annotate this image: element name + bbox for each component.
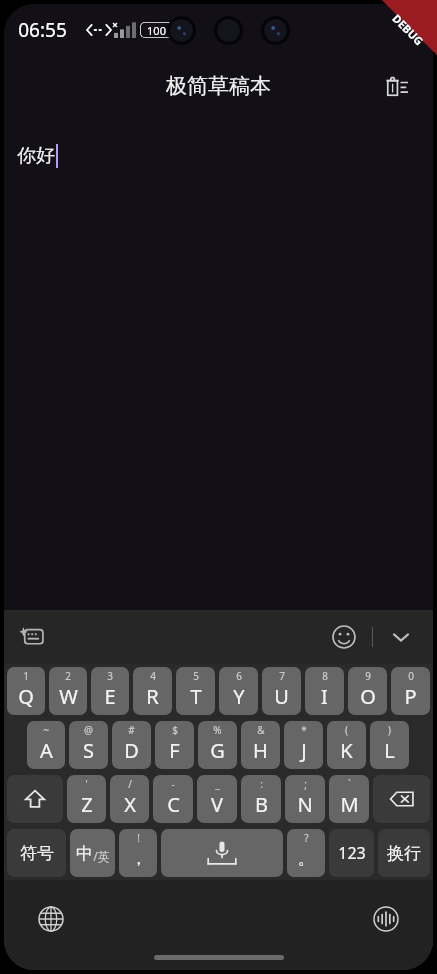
- button[interactable]: 换行: [378, 829, 430, 877]
- staticText: J: [301, 737, 307, 764]
- button[interactable]: 7: [262, 667, 301, 715]
- button[interactable]: ): [370, 721, 409, 769]
- staticText: @: [84, 723, 93, 737]
- button[interactable]: Hide keyboard: [381, 617, 421, 657]
- button[interactable]: /: [110, 775, 149, 823]
- button[interactable]: Smart keyboard: [12, 617, 52, 657]
- staticText: 你好: [17, 144, 55, 168]
- button[interactable]: 0: [391, 667, 430, 715]
- staticText: Q: [18, 683, 34, 710]
- button[interactable]: Shift: [7, 775, 63, 823]
- button[interactable]: 你好: [4, 116, 433, 610]
- button[interactable]: -: [153, 775, 193, 823]
- staticText: ;: [304, 777, 307, 791]
- button[interactable]: Emoji: [324, 617, 364, 657]
- staticText: 8: [322, 669, 328, 683]
- staticText: /英: [93, 848, 110, 864]
- staticText: N: [297, 791, 313, 818]
- staticText: S: [83, 737, 94, 764]
- button[interactable]: `: [329, 775, 369, 823]
- staticText: C: [167, 791, 180, 818]
- staticText: 7: [279, 669, 285, 683]
- button[interactable]: 5: [176, 667, 215, 715]
- staticText: 换行: [387, 843, 421, 864]
- staticText: I: [321, 683, 328, 710]
- button[interactable]: *: [284, 721, 323, 769]
- staticText: ': [85, 777, 88, 791]
- staticText: 0: [408, 669, 414, 683]
- staticText: U: [274, 683, 289, 710]
- staticText: :: [260, 777, 263, 791]
- button[interactable]: Voice: [367, 900, 405, 938]
- button[interactable]: 1: [7, 667, 45, 715]
- staticText: H: [253, 737, 268, 764]
- staticText: ~: [43, 723, 49, 737]
- staticText: ，: [130, 848, 147, 869]
- button[interactable]: !: [119, 829, 157, 877]
- button[interactable]: :: [241, 775, 281, 823]
- button[interactable]: Voice input: [161, 829, 283, 877]
- staticText: 2: [65, 669, 71, 683]
- staticText: &: [257, 723, 265, 737]
- staticText: X: [124, 791, 136, 818]
- staticText: 3: [107, 669, 113, 683]
- button[interactable]: 6: [219, 667, 258, 715]
- staticText: 1: [23, 669, 29, 683]
- button[interactable]: Clear notes: [377, 66, 417, 106]
- button[interactable]: $: [155, 721, 194, 769]
- staticText: F: [169, 737, 180, 764]
- staticText: /: [128, 777, 132, 791]
- staticText: Z: [81, 791, 93, 818]
- staticText: Y: [233, 683, 245, 710]
- staticText: E: [104, 683, 116, 710]
- staticText: R: [146, 683, 159, 710]
- staticText: 5: [193, 669, 199, 683]
- button[interactable]: &: [241, 721, 280, 769]
- staticText: 符号: [20, 843, 54, 864]
- staticText: $: [172, 723, 178, 737]
- staticText: P: [404, 683, 417, 710]
- button[interactable]: 123: [329, 829, 374, 877]
- button[interactable]: _: [197, 775, 237, 823]
- button[interactable]: Change language: [32, 900, 70, 938]
- button[interactable]: ?: [287, 829, 325, 877]
- staticText: 123: [338, 842, 366, 864]
- staticText: ): [388, 723, 391, 737]
- button[interactable]: @: [69, 721, 108, 769]
- staticText: 9: [365, 669, 371, 683]
- staticText: *: [301, 723, 307, 737]
- staticText: 中: [76, 843, 93, 864]
- button[interactable]: 4: [133, 667, 172, 715]
- staticText: (: [345, 723, 348, 737]
- button[interactable]: ': [67, 775, 106, 823]
- button[interactable]: 8: [305, 667, 344, 715]
- button[interactable]: Backspace: [373, 775, 430, 823]
- staticText: `: [348, 777, 351, 791]
- staticText: M: [340, 791, 359, 818]
- staticText: 4: [150, 669, 156, 683]
- staticText: L: [384, 737, 395, 764]
- staticText: DEBUG: [389, 11, 427, 48]
- staticText: 06:55: [18, 17, 67, 43]
- button[interactable]: 3: [91, 667, 129, 715]
- staticText: 6: [236, 669, 242, 683]
- staticText: ?: [304, 831, 309, 845]
- button[interactable]: ~: [27, 721, 65, 769]
- staticText: O: [360, 683, 376, 710]
- button[interactable]: %: [198, 721, 237, 769]
- button[interactable]: 符号: [7, 829, 66, 877]
- staticText: #: [128, 723, 135, 737]
- button[interactable]: #: [112, 721, 151, 769]
- staticText: 极简草稿本: [166, 73, 271, 99]
- staticText: V: [211, 791, 223, 818]
- staticText: 。: [298, 848, 315, 869]
- staticText: A: [40, 737, 53, 764]
- button[interactable]: 2: [49, 667, 87, 715]
- button[interactable]: 9: [348, 667, 387, 715]
- staticText: _: [215, 777, 220, 791]
- staticText: G: [210, 737, 225, 764]
- button[interactable]: ;: [285, 775, 325, 823]
- staticText: B: [255, 791, 268, 818]
- button[interactable]: (: [327, 721, 366, 769]
- button[interactable]: 中: [70, 829, 115, 877]
